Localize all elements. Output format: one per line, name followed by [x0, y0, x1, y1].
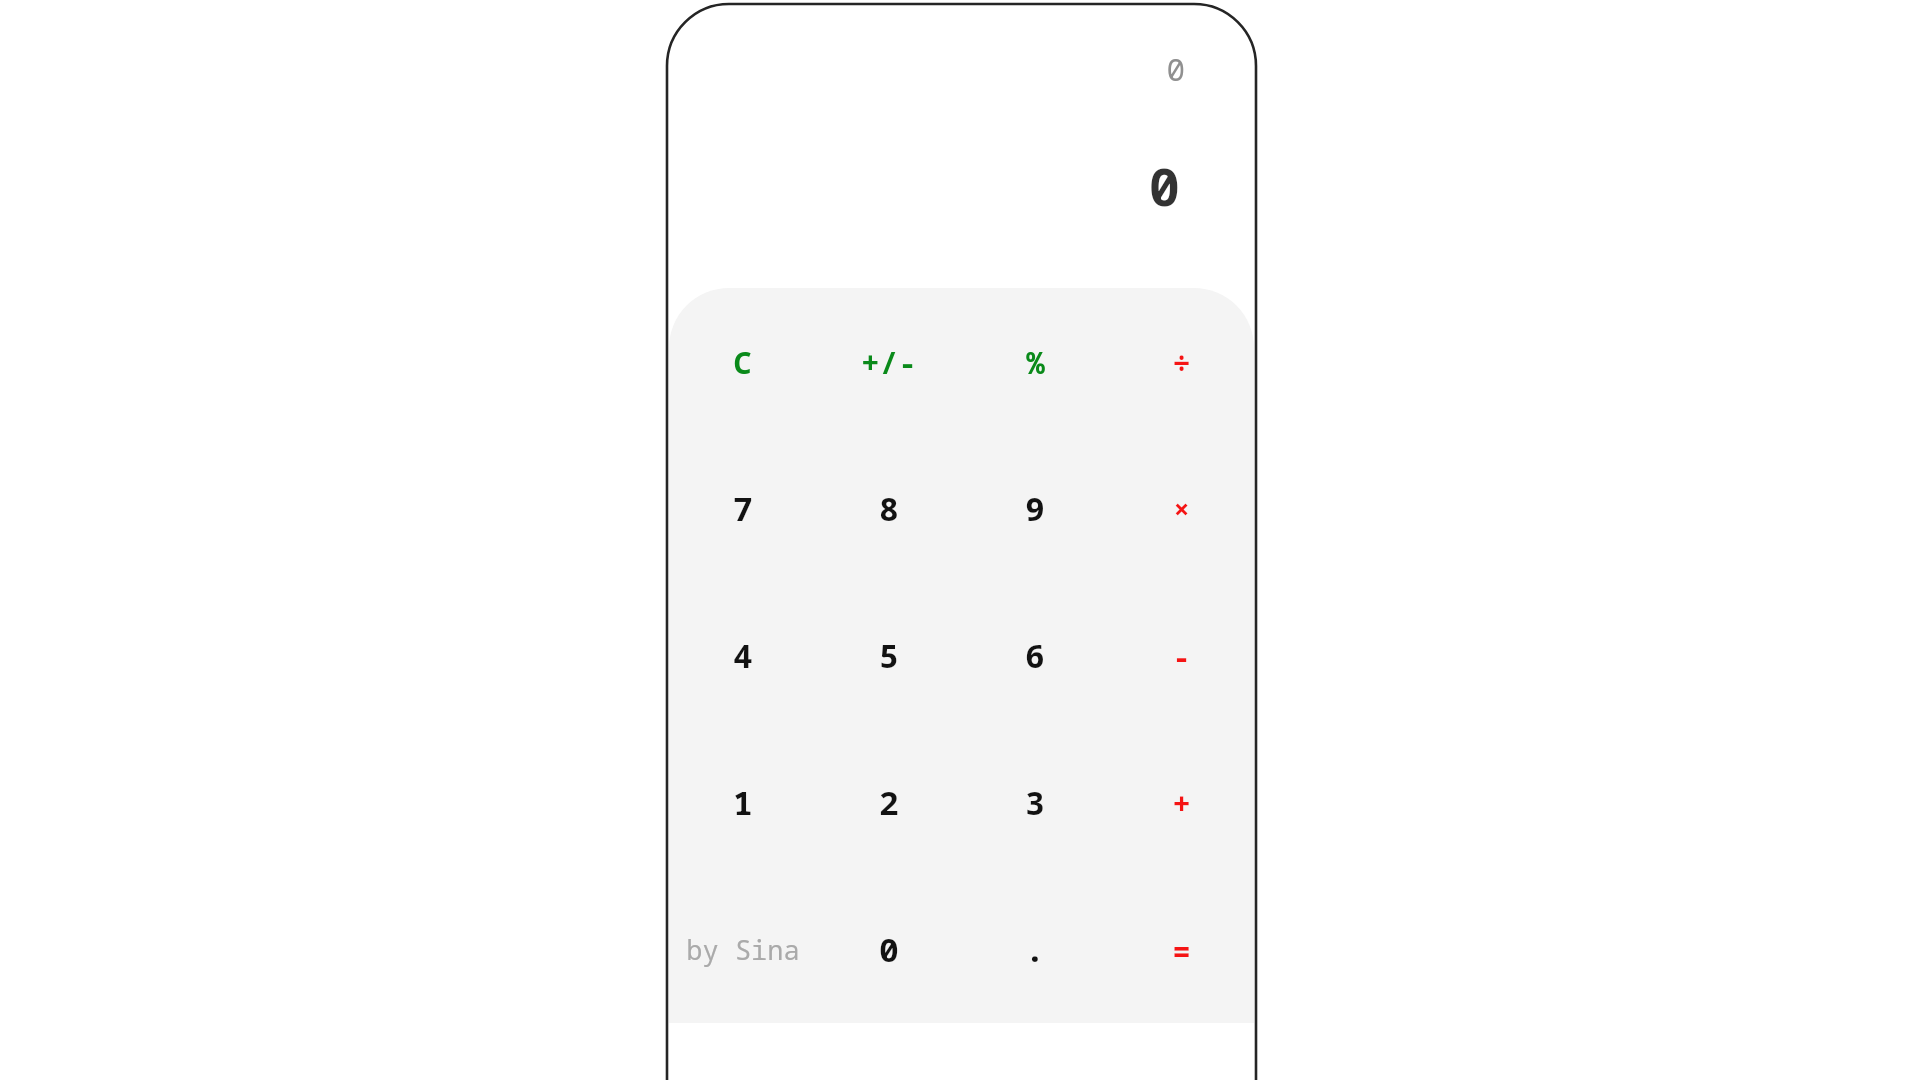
- staticText: %: [1026, 341, 1045, 383]
- staticText: by Sina: [686, 931, 800, 968]
- staticText: 0: [879, 927, 899, 972]
- button[interactable]: 5: [816, 582, 962, 729]
- button[interactable]: 1: [669, 729, 816, 876]
- button[interactable]: Divide: [1108, 288, 1254, 435]
- staticText: 1: [733, 780, 753, 825]
- staticText: 2: [879, 780, 899, 825]
- staticText: 7: [733, 486, 753, 531]
- button[interactable]: Minus: [1108, 582, 1254, 729]
- staticText: -: [1172, 635, 1191, 677]
- staticText: 5: [879, 633, 899, 678]
- staticText: ÷: [1172, 341, 1191, 383]
- staticText: C: [733, 341, 752, 383]
- staticText: 4: [733, 633, 753, 678]
- button[interactable]: Multiply: [1108, 435, 1254, 582]
- button[interactable]: Plus: [1108, 729, 1254, 876]
- button[interactable]: Clear: [669, 288, 816, 435]
- button[interactable]: 7: [669, 435, 816, 582]
- button[interactable]: Decimal point: [962, 876, 1108, 1023]
- button[interactable]: Equals: [1108, 876, 1254, 1023]
- staticText: ×: [1173, 490, 1190, 527]
- button[interactable]: 3: [962, 729, 1108, 876]
- button[interactable]: 2: [816, 729, 962, 876]
- button[interactable]: 4: [669, 582, 816, 729]
- staticText: 3: [1025, 780, 1045, 825]
- staticText: 0: [1148, 150, 1180, 210]
- staticText: =: [1172, 929, 1191, 971]
- button[interactable]: by Sina: [669, 876, 816, 1023]
- staticText: 9: [1025, 486, 1045, 531]
- staticText: 8: [879, 486, 899, 531]
- button[interactable]: 6: [962, 582, 1108, 729]
- staticText: 0: [1166, 48, 1185, 88]
- button[interactable]: 0: [816, 876, 962, 1023]
- button[interactable]: Percent: [962, 288, 1108, 435]
- staticText: +/-: [861, 341, 917, 383]
- staticText: .: [1025, 927, 1045, 972]
- staticText: 6: [1025, 633, 1045, 678]
- staticText: +: [1172, 782, 1191, 824]
- button[interactable]: 9: [962, 435, 1108, 582]
- button[interactable]: 8: [816, 435, 962, 582]
- button[interactable]: Toggle sign: [816, 288, 962, 435]
